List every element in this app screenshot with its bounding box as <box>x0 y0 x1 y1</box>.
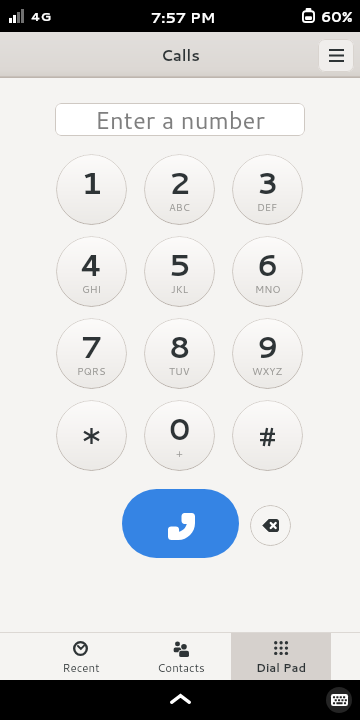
staticText: 60% <box>321 6 353 27</box>
button[interactable]: 8 <box>144 318 215 389</box>
button[interactable]: 0 <box>144 400 215 471</box>
staticText: PQRS <box>77 364 106 378</box>
staticText: GHI <box>82 282 102 296</box>
staticText: 7 <box>81 325 103 367</box>
button[interactable]: Backspace <box>250 505 291 546</box>
staticText: 3 <box>257 161 279 203</box>
button[interactable]: 7 <box>56 318 127 389</box>
button[interactable]: Enter a number <box>55 103 305 136</box>
button[interactable]: 6 <box>232 236 303 307</box>
button[interactable]: Recent <box>30 633 131 680</box>
staticText: JKL <box>171 282 189 296</box>
button[interactable]: 4 <box>56 236 127 307</box>
staticText: Recent <box>62 659 100 675</box>
button[interactable]: Keyboard <box>326 687 352 713</box>
staticText: TUV <box>169 364 190 378</box>
staticText: 4G <box>31 7 52 25</box>
staticText: + <box>176 446 183 460</box>
button[interactable] <box>56 400 127 471</box>
button[interactable]: Home <box>157 687 203 711</box>
button[interactable]: Call <box>122 489 239 558</box>
staticText: DEF <box>257 200 278 214</box>
button[interactable]: Contacts <box>131 633 231 680</box>
staticText: 0 <box>169 407 191 449</box>
button[interactable]: Dial Pad <box>231 633 331 680</box>
staticText: Contacts <box>157 659 205 675</box>
staticText: 6 <box>257 243 279 285</box>
staticText: 7:57 PM <box>151 7 216 28</box>
staticText: Calls <box>161 45 200 66</box>
staticText: 5 <box>169 243 191 285</box>
button[interactable]: 9 <box>232 318 303 389</box>
staticText: Enter a number <box>95 103 265 136</box>
button[interactable]: 1 <box>56 154 127 225</box>
button[interactable]: Menu <box>318 39 354 72</box>
staticText: 1 <box>81 161 103 203</box>
button[interactable]: 5 <box>144 236 215 307</box>
button[interactable]: 2 <box>144 154 215 225</box>
button[interactable] <box>232 400 303 471</box>
staticText: 9 <box>257 325 279 367</box>
staticText: ABC <box>169 200 190 214</box>
staticText: Dial Pad <box>256 659 306 675</box>
staticText: 8 <box>169 325 191 367</box>
button[interactable]: 3 <box>232 154 303 225</box>
staticText: 4 <box>80 243 103 285</box>
staticText: 2 <box>169 161 191 203</box>
staticText: WXYZ <box>252 364 283 378</box>
staticText: MNO <box>255 282 281 296</box>
